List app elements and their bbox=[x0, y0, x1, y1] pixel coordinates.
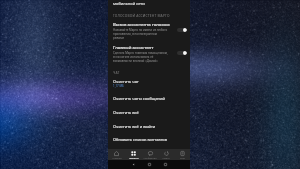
staticText: Главная bbox=[112, 157, 122, 160]
button[interactable]: Back bbox=[125, 161, 141, 168]
button[interactable]: Главная bbox=[108, 150, 125, 160]
staticText: Обновить список контактов bbox=[113, 137, 167, 142]
button[interactable]: Очистить всё bbox=[108, 110, 190, 119]
staticText: ЧАТ bbox=[113, 70, 120, 74]
staticText: ГОЛОСОВОЙ АССИСТЕНТ МАРГО bbox=[113, 13, 170, 17]
staticText: Сервисы bbox=[129, 157, 139, 160]
staticText: Очистить всё и выйти bbox=[113, 124, 156, 129]
staticText: Главный ассистент bbox=[113, 44, 154, 50]
staticText: Ещё bbox=[180, 157, 185, 160]
button[interactable]: Сообщения bbox=[142, 150, 158, 160]
button[interactable]: Ещё bbox=[174, 150, 190, 160]
button[interactable]: Очистить чаты сообщений bbox=[108, 96, 190, 105]
staticText: мобильной сети bbox=[113, 1, 145, 6]
staticText: Марго bbox=[162, 157, 170, 160]
button[interactable]: Сервисы bbox=[125, 150, 142, 160]
staticText: Сделать Марго главным помощником, если х… bbox=[113, 51, 168, 63]
button[interactable]: Recents bbox=[157, 161, 173, 168]
staticText: Сообщения bbox=[143, 157, 157, 160]
button[interactable]: Обновить список контактов bbox=[108, 137, 190, 146]
staticText: 1,17 МБ bbox=[113, 84, 124, 88]
staticText: Называйте Марго по имени из любого прило… bbox=[113, 28, 168, 40]
staticText: Очистить всё bbox=[113, 110, 139, 115]
button[interactable]: Марго bbox=[158, 150, 174, 160]
button[interactable]: Вызов ассистента голосом bbox=[108, 21, 190, 42]
button[interactable]: Home bbox=[141, 161, 157, 168]
button[interactable]: Главный ассистент bbox=[108, 44, 190, 65]
button[interactable]: Очистить всё и выйти bbox=[108, 124, 190, 133]
staticText: Очистить чаты сообщений bbox=[113, 96, 166, 101]
button[interactable]: Очистить чат bbox=[108, 79, 190, 90]
staticText: Очистить чат bbox=[113, 79, 139, 84]
staticText: Вызов ассистента голосом bbox=[113, 21, 170, 27]
